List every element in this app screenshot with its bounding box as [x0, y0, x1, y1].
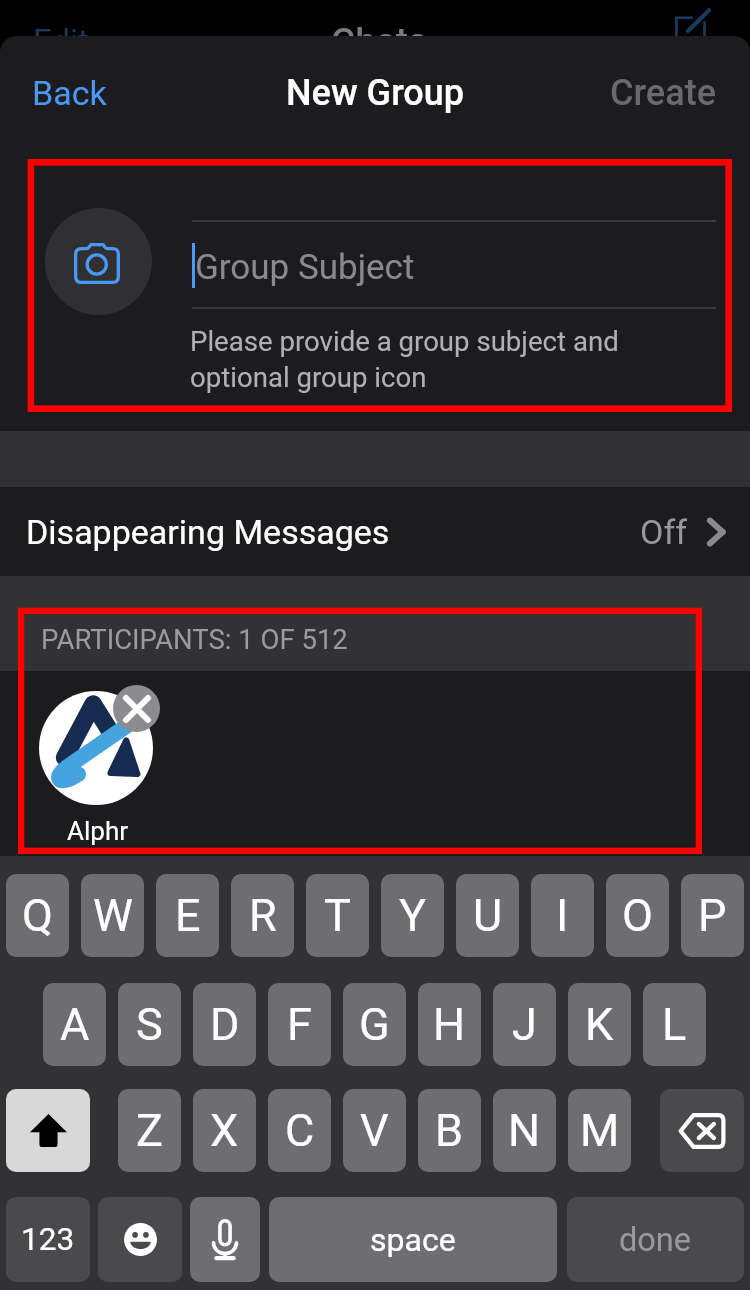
staticText: X [210, 1104, 239, 1157]
staticText: Alphr [67, 816, 129, 846]
staticText: K [585, 998, 614, 1051]
button[interactable]: J [493, 983, 556, 1066]
staticText: O [622, 889, 653, 942]
button[interactable]: Compose new message [675, 3, 719, 39]
staticText: T [324, 889, 351, 942]
staticText: Disappearing Messages [26, 512, 390, 552]
staticText: done [619, 1221, 692, 1259]
staticText: F [287, 998, 312, 1051]
button[interactable]: space [269, 1197, 557, 1282]
staticText: R [249, 889, 277, 942]
staticText: New Group [286, 72, 464, 114]
button[interactable]: A [43, 983, 106, 1066]
staticText: C [285, 1104, 315, 1157]
button[interactable]: B [418, 1089, 481, 1172]
staticText: 123 [21, 1221, 75, 1258]
staticText: H [433, 998, 466, 1051]
button[interactable]: Create [598, 58, 728, 128]
staticText: P [698, 889, 727, 942]
button[interactable]: Edit [33, 22, 89, 58]
staticText: Group Subject [195, 247, 415, 288]
staticText: E [175, 889, 201, 942]
button[interactable]: F [268, 983, 331, 1066]
staticText: Back [32, 73, 107, 113]
button[interactable]: G [343, 983, 406, 1066]
button[interactable]: done [567, 1197, 744, 1282]
staticText: V [360, 1104, 389, 1157]
button[interactable]: X [193, 1089, 256, 1172]
staticText: Y [399, 889, 427, 942]
button[interactable]: H [418, 983, 481, 1066]
button[interactable]: P [681, 874, 744, 957]
staticText: D [210, 998, 240, 1051]
button[interactable]: U [456, 874, 519, 957]
staticText: Please provide a group subject and optio… [190, 325, 619, 394]
staticText: W [93, 889, 133, 942]
staticText: L [662, 998, 687, 1051]
staticText: Q [22, 889, 53, 942]
staticText: B [435, 1104, 464, 1157]
button[interactable]: Emoji [98, 1197, 182, 1282]
button[interactable]: Voice input [190, 1197, 260, 1282]
staticText: Edit [33, 22, 89, 58]
button[interactable]: Q [6, 874, 69, 957]
staticText: space [370, 1221, 456, 1259]
staticText: Create [610, 72, 716, 114]
button[interactable]: Disappearing Messages [0, 487, 750, 576]
staticText: PARTICIPANTS: 1 OF 512 [41, 623, 348, 655]
button[interactable]: K [568, 983, 631, 1066]
staticText: G [359, 998, 390, 1051]
button[interactable]: Remove participant [113, 685, 160, 732]
button[interactable]: Shift [6, 1089, 90, 1172]
staticText: A [60, 998, 90, 1051]
button[interactable]: L [643, 983, 706, 1066]
button[interactable]: V [343, 1089, 406, 1172]
button[interactable]: Backspace [660, 1089, 744, 1172]
button[interactable]: Back [20, 59, 119, 127]
button[interactable]: N [493, 1089, 556, 1172]
button[interactable]: S [118, 983, 181, 1066]
staticText: M [580, 1104, 620, 1157]
staticText: S [136, 998, 163, 1051]
button[interactable]: O [606, 874, 669, 957]
button[interactable]: I [531, 874, 594, 957]
button[interactable]: 123 [6, 1197, 90, 1282]
staticText: Off [640, 512, 688, 552]
staticText: J [512, 998, 537, 1051]
staticText: Z [136, 1104, 163, 1157]
staticText: I [556, 889, 569, 942]
button[interactable]: D [193, 983, 256, 1066]
button[interactable]: Y [381, 874, 444, 957]
staticText: Chats [331, 20, 428, 56]
button[interactable]: C [268, 1089, 331, 1172]
staticText: U [473, 889, 503, 942]
button[interactable]: M [568, 1089, 631, 1172]
button[interactable]: Z [118, 1089, 181, 1172]
button[interactable]: E [156, 874, 219, 957]
button[interactable]: R [231, 874, 294, 957]
staticText: N [508, 1104, 541, 1157]
button[interactable]: T [306, 874, 369, 957]
button[interactable]: Add group icon [45, 208, 152, 315]
button[interactable]: W [81, 874, 144, 957]
